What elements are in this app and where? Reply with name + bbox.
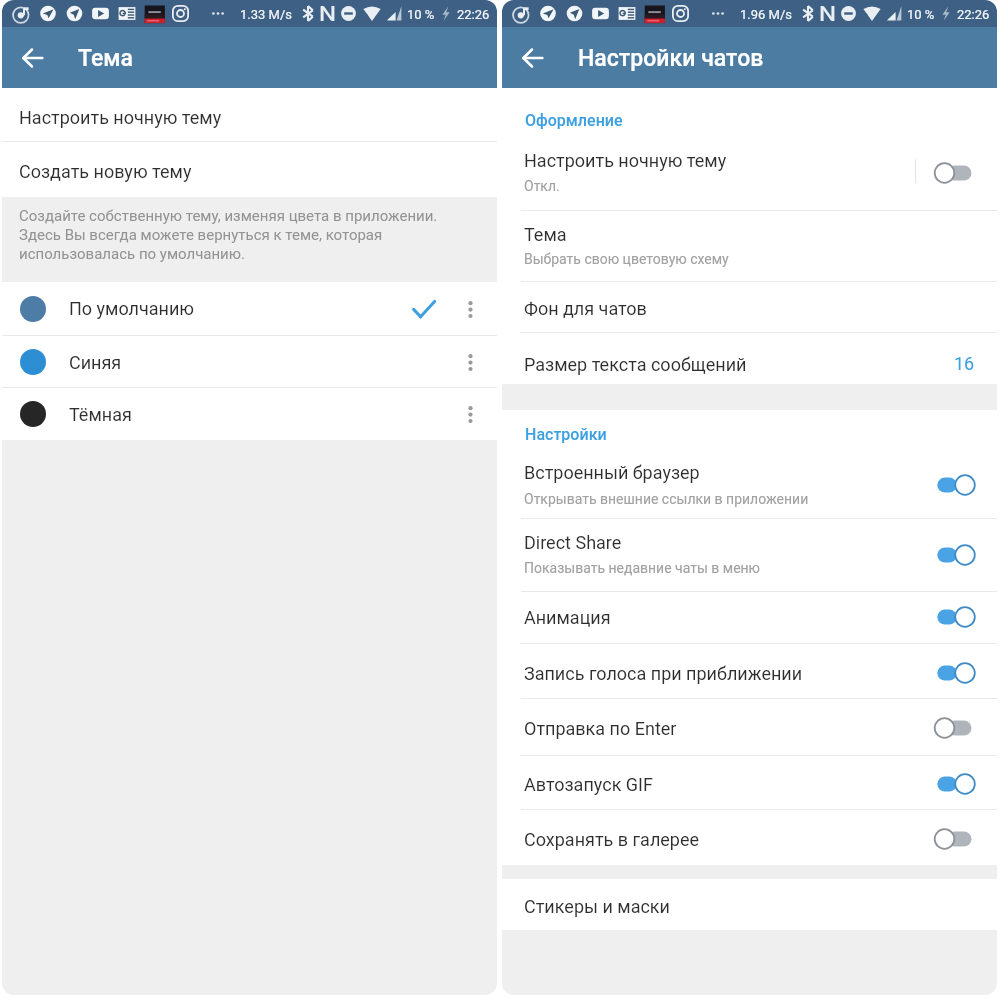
- button[interactable]: More options: [456, 287, 484, 331]
- staticText: Автозапуск GIF: [524, 774, 653, 795]
- staticText: Выбрать свою цветовую схему: [524, 251, 729, 267]
- button[interactable]: [502, 282, 997, 332]
- staticText: Стикеры и маски: [524, 896, 670, 917]
- staticText: Оформление: [525, 111, 623, 130]
- staticText: 22:26: [957, 7, 990, 22]
- staticText: Запись голоса при приближении: [524, 663, 803, 684]
- button[interactable]: Disable: [934, 600, 978, 634]
- button[interactable]: [502, 879, 997, 930]
- button[interactable]: [502, 699, 997, 755]
- staticText: Откл.: [524, 178, 560, 194]
- staticText: Показывать недавние чаты в меню: [524, 560, 761, 576]
- button[interactable]: [502, 592, 997, 643]
- button[interactable]: Enable: [934, 711, 978, 745]
- staticText: Настроить ночную тему: [19, 107, 222, 128]
- staticText: Открывать внешние ссылки в приложении: [524, 491, 809, 507]
- button[interactable]: [502, 450, 997, 518]
- staticText: Тёмная: [69, 404, 132, 425]
- button[interactable]: Enable: [934, 822, 978, 856]
- button[interactable]: [502, 519, 997, 591]
- staticText: По умолчанию: [69, 298, 195, 319]
- staticText: Размер текста сообщений: [524, 354, 747, 375]
- staticText: 10 %: [907, 7, 935, 22]
- button[interactable]: [502, 140, 997, 210]
- button[interactable]: Back: [504, 27, 561, 88]
- staticText: 1.96 M/s: [740, 7, 792, 22]
- staticText: Отправка по Enter: [524, 718, 677, 739]
- button[interactable]: [502, 810, 997, 865]
- staticText: Настройки чатов: [578, 45, 764, 72]
- button[interactable]: Disable: [934, 538, 978, 572]
- staticText: Создайте собственную тему, изменяя цвета…: [19, 207, 438, 263]
- button[interactable]: Disable: [934, 656, 978, 690]
- staticText: Настроить ночную тему: [524, 150, 727, 171]
- staticText: 16: [954, 353, 975, 374]
- staticText: 1.33 M/s: [240, 7, 292, 22]
- button[interactable]: [502, 333, 997, 384]
- staticText: Встроенный браузер: [524, 462, 700, 483]
- button[interactable]: [2, 88, 497, 141]
- staticText: Фон для чатов: [524, 298, 647, 319]
- staticText: Тема: [78, 45, 134, 72]
- staticText: Создать новую тему: [19, 161, 192, 182]
- staticText: Синяя: [69, 352, 122, 373]
- button[interactable]: More options: [456, 392, 484, 436]
- staticText: Тема: [524, 224, 567, 245]
- button[interactable]: Disable: [934, 468, 978, 502]
- staticText: Сохранять в галерее: [524, 829, 700, 850]
- button[interactable]: [2, 142, 497, 197]
- staticText: 22:26: [457, 7, 490, 22]
- button[interactable]: Синяя: [2, 336, 497, 388]
- button[interactable]: More options: [456, 340, 484, 384]
- button[interactable]: [502, 211, 997, 281]
- button[interactable]: [502, 756, 997, 809]
- button[interactable]: Disable: [934, 767, 978, 801]
- staticText: Direct Share: [524, 532, 622, 553]
- button[interactable]: [502, 644, 997, 698]
- staticText: 10 %: [407, 7, 435, 22]
- staticText: Анимация: [524, 607, 611, 628]
- button[interactable]: Back: [4, 27, 61, 88]
- button[interactable]: Enable: [934, 156, 978, 190]
- button[interactable]: Тёмная: [2, 388, 497, 440]
- button[interactable]: По умолчанию: [2, 282, 497, 335]
- staticText: Настройки: [525, 425, 607, 444]
